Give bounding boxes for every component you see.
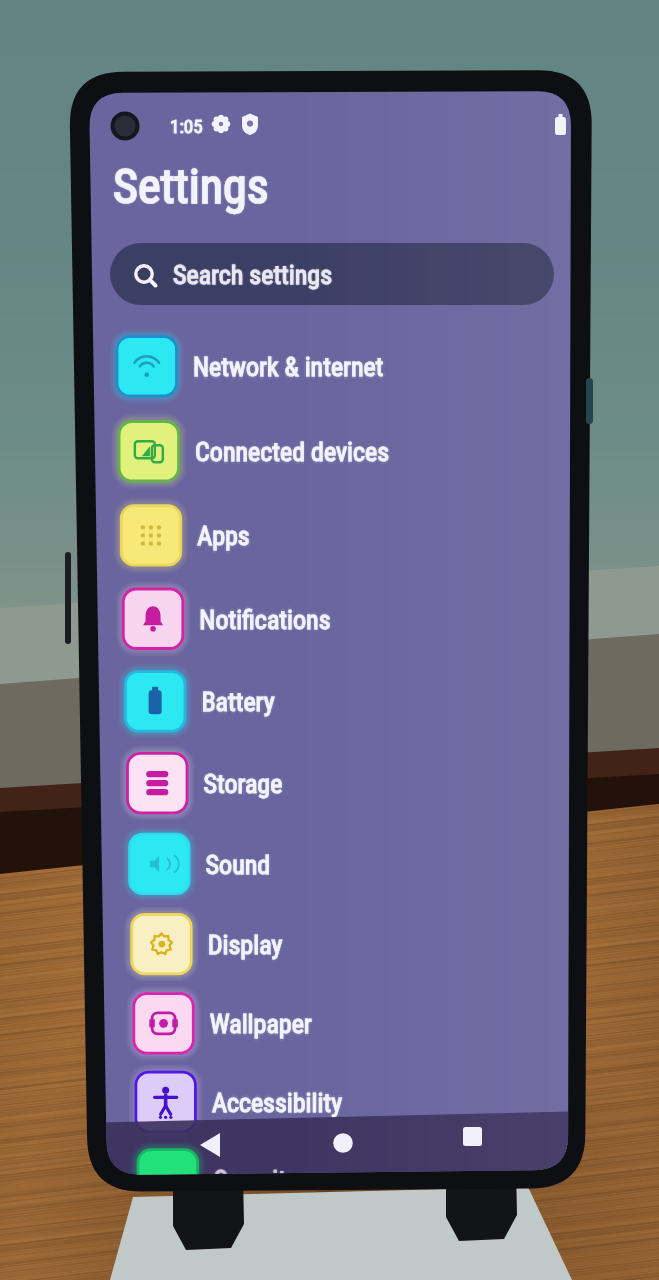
button[interactable]: Recent apps (442, 1112, 506, 1164)
button[interactable]: Home (312, 1116, 376, 1168)
button[interactable]: Back (180, 1118, 256, 1172)
button[interactable]: Storage (119, 742, 571, 823)
button[interactable]: Battery (117, 660, 569, 741)
button[interactable]: Accessibility (127, 1061, 579, 1142)
button[interactable]: Display (123, 903, 575, 984)
button[interactable]: Wallpaper (125, 982, 577, 1063)
button[interactable]: Sound (121, 823, 573, 904)
button[interactable]: Connected devices (111, 410, 563, 491)
button[interactable]: Search settings (110, 243, 554, 305)
button[interactable]: Apps (113, 494, 565, 575)
button[interactable]: Notifications (115, 578, 567, 659)
button[interactable]: Network & internet (109, 325, 561, 406)
